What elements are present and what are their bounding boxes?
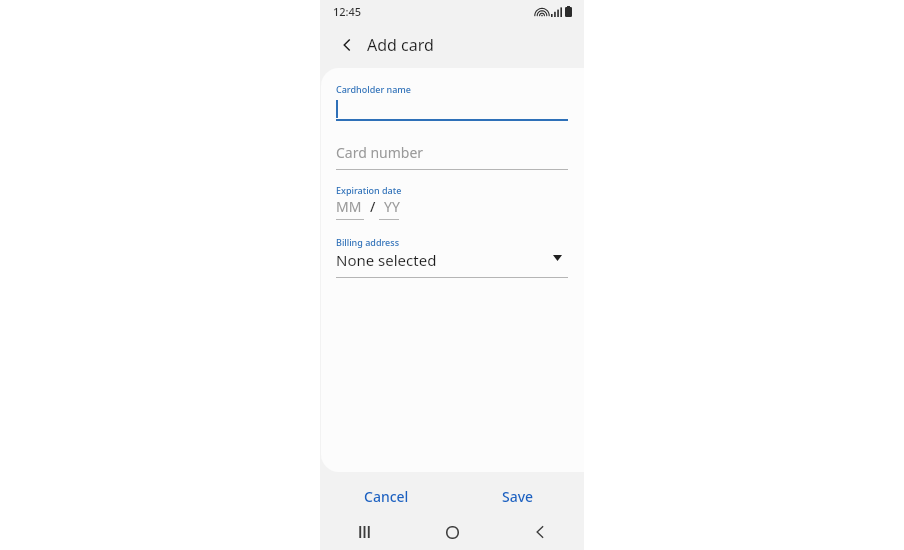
button[interactable]: Card number bbox=[336, 139, 568, 170]
staticText: Cardholder name bbox=[336, 83, 412, 95]
staticText: Save bbox=[502, 487, 534, 506]
button[interactable]: Cancel bbox=[320, 478, 452, 514]
staticText: None selected bbox=[336, 250, 437, 270]
staticText: MM bbox=[336, 197, 362, 216]
button[interactable]: Back bbox=[496, 514, 584, 550]
staticText: / bbox=[370, 197, 376, 216]
staticText: 12:45 bbox=[333, 4, 362, 19]
button[interactable]: Home bbox=[408, 514, 496, 550]
button[interactable]: Cardholder name bbox=[336, 83, 568, 121]
button[interactable]: Back bbox=[334, 32, 360, 58]
button[interactable]: Expiration date bbox=[336, 184, 568, 220]
staticText: Card number bbox=[336, 143, 424, 162]
staticText: Add card bbox=[367, 34, 434, 56]
staticText: Billing address bbox=[336, 236, 400, 248]
staticText: Cancel bbox=[364, 487, 409, 506]
button[interactable]: Save bbox=[452, 478, 584, 514]
staticText: YY bbox=[384, 197, 400, 216]
button[interactable]: Recents bbox=[320, 514, 408, 550]
button[interactable]: Billing address bbox=[336, 236, 568, 278]
staticText: Expiration date bbox=[336, 184, 402, 196]
